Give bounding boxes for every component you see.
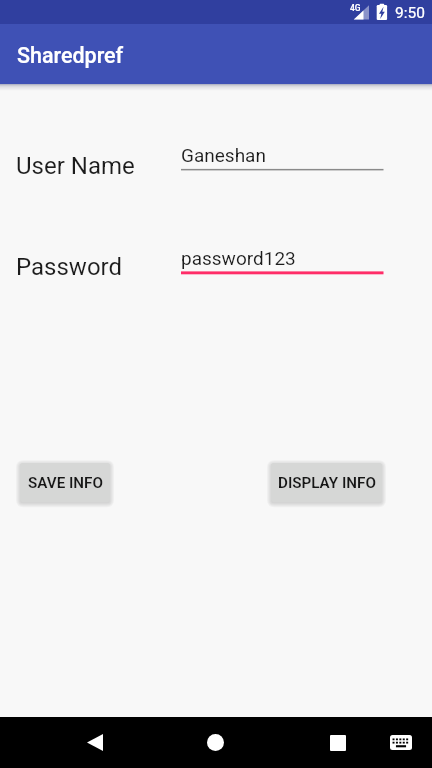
button[interactable]: Home: [191, 717, 240, 768]
button[interactable]: password123: [181, 243, 384, 274]
button[interactable]: Keyboard: [376, 717, 425, 768]
staticText: SAVE INFO: [28, 474, 103, 492]
staticText: Ganeshan: [181, 144, 266, 166]
button[interactable]: SAVE INFO: [20, 463, 110, 502]
button[interactable]: Ganeshan: [181, 140, 384, 171]
staticText: Sharedpref: [17, 43, 124, 68]
staticText: DISPLAY INFO: [278, 474, 376, 492]
staticText: User Name: [16, 152, 135, 180]
button[interactable]: Recent apps: [313, 717, 362, 768]
staticText: password123: [181, 247, 296, 269]
staticText: Password: [16, 253, 123, 281]
button[interactable]: Back: [70, 717, 119, 768]
button[interactable]: DISPLAY INFO: [271, 463, 382, 502]
staticText: 9:50: [395, 4, 425, 22]
staticText: 4G: [350, 3, 361, 13]
